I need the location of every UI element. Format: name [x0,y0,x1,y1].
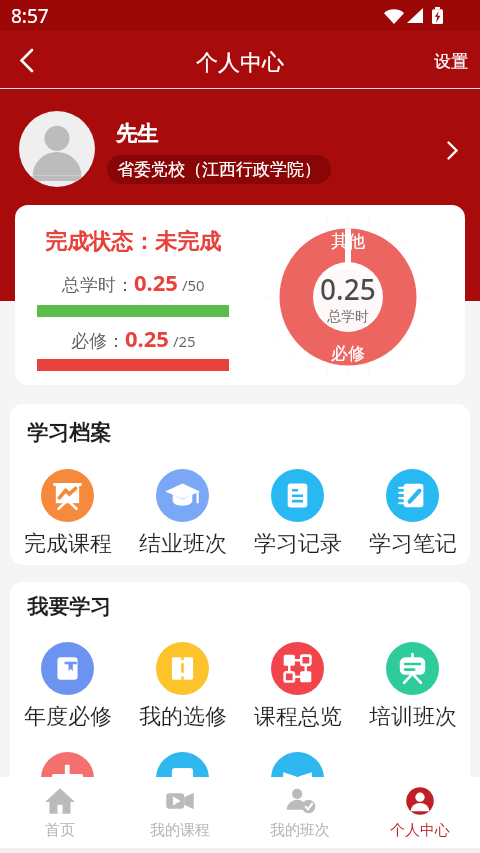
button[interactable]: 在线阅读 [240,752,355,777]
button[interactable]: 我的课程 [120,777,240,848]
button[interactable]: 完成课程 [10,469,125,558]
button[interactable]: 个人中心 [360,777,480,848]
staticText: 个人中心 [196,49,284,77]
staticText: 结业班次 [139,530,227,558]
staticText: 8:57 [11,3,49,29]
staticText: 首页 [45,821,75,840]
staticText: 我的选修 [139,703,227,731]
staticText: 设置 [434,51,468,72]
staticText: 必修 [331,343,365,364]
staticText: 年度必修 [24,703,112,731]
staticText: 0.25 [134,267,178,297]
button[interactable]: 结业班次 [125,469,240,558]
staticText: 完成状态：未完成 [45,228,221,256]
staticText: /50 [178,275,205,295]
button[interactable]: 我的班次 [240,777,360,848]
staticText: 先生 [116,121,158,147]
staticText: 学习笔记 [369,530,457,558]
staticText: 总学时： [62,274,134,297]
staticText: 个人中心 [390,821,450,840]
button[interactable]: 专题学习 [125,752,240,777]
staticText: 我要学习 [27,594,111,620]
staticText: 总学时 [327,308,369,326]
staticText: 我的班次 [270,821,330,840]
staticText: 完成课程 [24,530,112,558]
button[interactable]: 设置 [420,31,480,89]
button[interactable]: 课程总览 [240,642,355,731]
staticText: 学习记录 [254,530,342,558]
button[interactable]: 培训班次 [355,642,470,731]
staticText: 其他 [331,231,365,252]
staticText: 省委党校（江西行政学院） [117,159,321,180]
button[interactable]: 首页 [0,777,120,848]
button[interactable]: 热门推荐 [10,752,125,777]
button[interactable]: 学习笔记 [355,469,470,558]
staticText: 课程总览 [254,703,342,731]
staticText: 我的课程 [150,821,210,840]
button[interactable]: 学习记录 [240,469,355,558]
staticText: 培训班次 [369,703,457,731]
button[interactable]: 我的选修 [125,642,240,731]
button[interactable]: 返回 [0,31,52,89]
button[interactable]: 年度必修 [10,642,125,731]
staticText: 必修： [71,330,125,353]
staticText: /25 [169,331,196,351]
staticText: 0.25 [125,323,169,353]
button[interactable]: 先生 [0,89,480,205]
staticText: 0.25 [320,270,376,308]
staticText: 学习档案 [27,420,111,446]
